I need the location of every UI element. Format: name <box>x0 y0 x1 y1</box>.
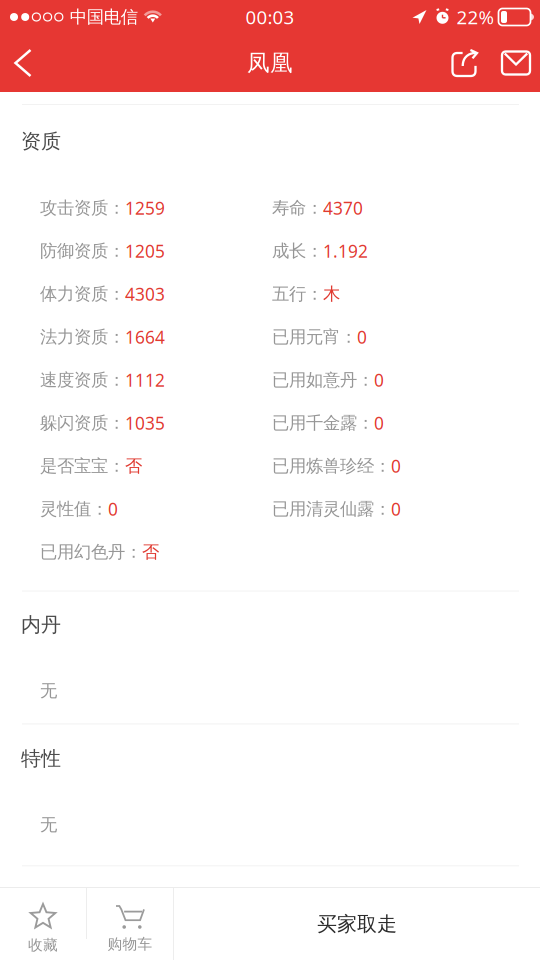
staticText: 内丹 <box>21 613 61 637</box>
staticText: 22% <box>456 5 494 29</box>
staticText: 0 <box>108 498 118 521</box>
staticText: 体力资质： <box>40 283 125 305</box>
staticText: 0 <box>391 455 401 478</box>
staticText: 资质 <box>21 129 61 154</box>
button[interactable]: Share <box>444 34 490 92</box>
staticText: 攻击资质： <box>40 197 125 219</box>
staticText: 买家取走 <box>317 912 397 936</box>
staticText: 4370 <box>323 197 363 220</box>
button[interactable]: 收藏 <box>0 888 86 960</box>
staticText: 已用清灵仙露： <box>272 498 391 520</box>
staticText: 4303 <box>125 283 165 306</box>
staticText: 灵性值： <box>40 498 108 520</box>
staticText: 成长： <box>272 240 323 262</box>
staticText: 法力资质： <box>40 326 125 348</box>
button[interactable]: Mail <box>490 34 540 92</box>
staticText: 0 <box>374 369 384 392</box>
staticText: 寿命： <box>272 197 323 219</box>
staticText: 木 <box>323 283 340 305</box>
staticText: 否 <box>142 541 159 563</box>
staticText: 0 <box>374 412 384 435</box>
staticText: 1112 <box>125 369 165 392</box>
staticText: 收藏 <box>28 936 58 954</box>
staticText: 无 <box>40 680 57 701</box>
staticText: 已用幻色丹： <box>40 541 142 563</box>
staticText: 否 <box>125 455 142 477</box>
staticText: 已用如意丹： <box>272 369 374 391</box>
staticText: 0 <box>391 498 401 521</box>
staticText: 1259 <box>125 197 165 220</box>
button[interactable]: 买家取走 <box>174 888 540 960</box>
staticText: 已用千金露： <box>272 412 374 434</box>
staticText: 是否宝宝： <box>40 455 125 477</box>
staticText: 速度资质： <box>40 369 125 391</box>
button[interactable]: 购物车 <box>87 888 173 960</box>
staticText: 购物车 <box>107 935 152 953</box>
staticText: 已用元宵： <box>272 326 357 348</box>
staticText: 无 <box>40 814 57 835</box>
button[interactable]: Back <box>0 34 46 92</box>
staticText: 1205 <box>125 240 165 263</box>
staticText: 五行： <box>272 283 323 305</box>
staticText: 1035 <box>125 412 165 435</box>
staticText: 中国电信 <box>70 6 138 28</box>
staticText: 1664 <box>125 326 165 349</box>
staticText: 已用炼兽珍经： <box>272 455 391 477</box>
staticText: 0 <box>357 326 367 349</box>
staticText: 00:03 <box>245 5 294 29</box>
staticText: 1.192 <box>323 240 368 263</box>
staticText: 特性 <box>21 746 61 771</box>
staticText: 防御资质： <box>40 240 125 262</box>
staticText: 凤凰 <box>247 49 293 77</box>
staticText: 躲闪资质： <box>40 412 125 434</box>
